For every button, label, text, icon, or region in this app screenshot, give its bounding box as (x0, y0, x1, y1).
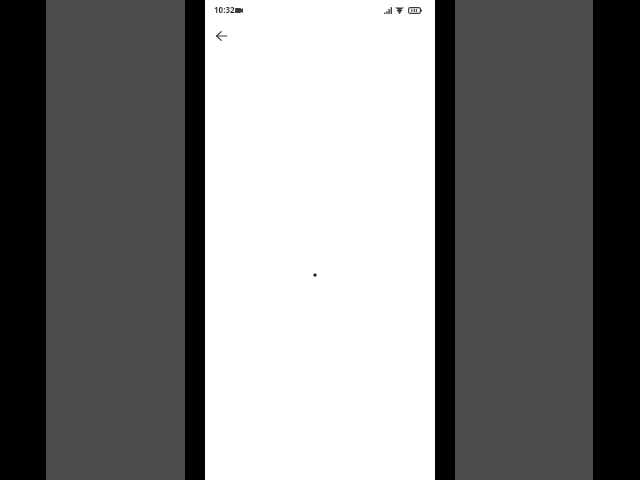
button[interactable]: Back (210, 25, 232, 47)
staticText: 10:32 (214, 4, 235, 15)
